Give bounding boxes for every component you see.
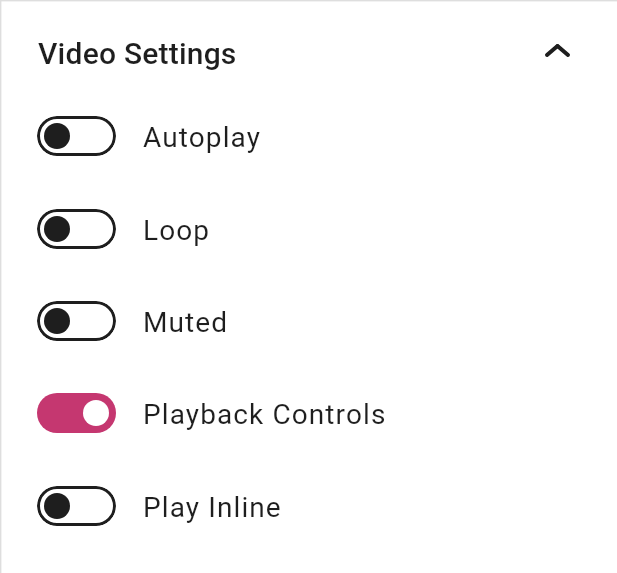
staticText: Playback Controls	[143, 398, 387, 431]
button[interactable]: Muted	[0, 301, 617, 394]
staticText: Loop	[143, 214, 211, 247]
staticText: Muted	[143, 306, 229, 339]
button[interactable]: Loop	[0, 209, 617, 302]
button[interactable]: Autoplay	[0, 116, 617, 209]
button[interactable]: Playback Controls	[0, 393, 617, 486]
button[interactable]: Play Inline	[0, 486, 617, 571]
button[interactable]: Collapse Video Settings	[533, 26, 581, 74]
button[interactable]: Video Settings	[0, 28, 617, 78]
staticText: Play Inline	[143, 491, 282, 524]
staticText: Autoplay	[143, 121, 262, 154]
staticText: Video Settings	[38, 36, 237, 71]
